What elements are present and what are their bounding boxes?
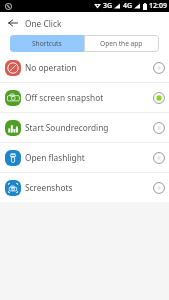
staticText: 4G	[123, 1, 133, 11]
button[interactable]: Screenshots	[0, 173, 169, 202]
staticText: One Click	[25, 18, 62, 29]
staticText: Open flashlight	[25, 152, 85, 163]
staticText: Shortcuts	[32, 39, 62, 48]
button[interactable]: Back	[0, 12, 25, 34]
staticText: Start Soundrecording	[25, 122, 109, 133]
button[interactable]: Off screen snapshot	[0, 83, 169, 112]
button[interactable]: Shortcuts	[10, 35, 84, 52]
staticText: 12:09	[149, 1, 167, 11]
staticText: Open the app	[100, 39, 143, 48]
button[interactable]: Open the app	[84, 35, 159, 52]
button[interactable]: Open flashlight	[0, 143, 169, 172]
button[interactable]: Start Soundrecording	[0, 113, 169, 142]
staticText: Screenshots	[25, 182, 73, 193]
staticText: 3G	[103, 1, 113, 11]
staticText: No operation	[25, 62, 77, 73]
staticText: Off screen snapshot	[25, 92, 104, 103]
button[interactable]: No operation	[0, 53, 169, 82]
